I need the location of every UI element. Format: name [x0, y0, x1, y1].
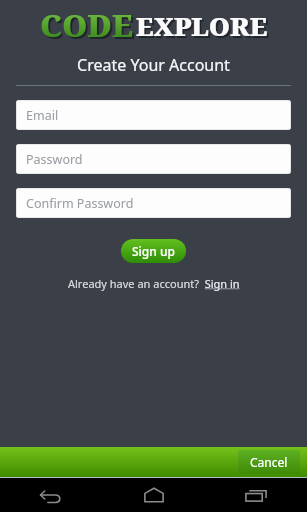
staticText: Confirm Password: [26, 195, 134, 212]
button[interactable]: Sign up: [121, 239, 186, 263]
staticText: Create Your Account: [0, 54, 307, 76]
staticText: Cancel: [250, 454, 288, 470]
button[interactable]: Confirm Password: [16, 188, 291, 218]
button[interactable]: Home: [103, 478, 205, 512]
staticText: CODE: [42, 6, 135, 48]
button[interactable]: Email: [16, 100, 291, 130]
button[interactable]: Already have an account? Sign in: [68, 276, 240, 291]
button[interactable]: Back: [0, 478, 103, 512]
staticText: EXPLORE: [138, 10, 270, 45]
button[interactable]: Password: [16, 144, 291, 174]
button[interactable]: Cancel: [238, 450, 300, 474]
staticText: EXPLORE: [136, 8, 268, 43]
staticText: Password: [26, 151, 83, 168]
staticText: Sign up: [132, 243, 175, 259]
button[interactable]: Recent apps: [205, 478, 307, 512]
staticText: CODE: [40, 4, 133, 46]
staticText: Already have an account? Sign in: [68, 276, 240, 291]
staticText: Email: [26, 107, 59, 124]
